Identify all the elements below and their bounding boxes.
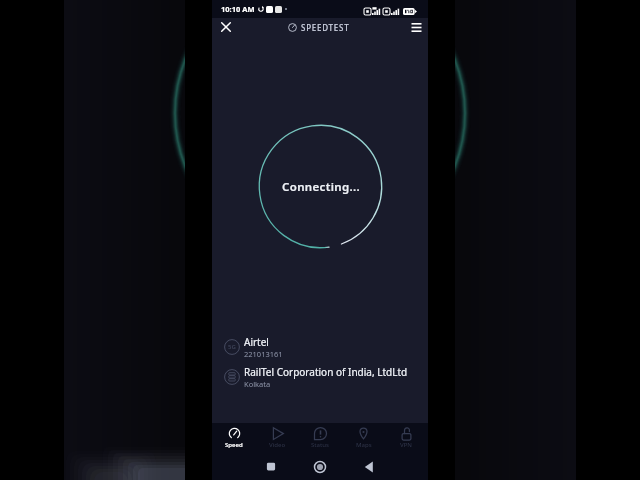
button[interactable]: Menu [407,18,425,36]
staticText: Connecting... [282,179,361,195]
staticText: Video [269,441,286,449]
staticText: RailTel Corporation of India, LtdLtd [244,365,408,379]
button[interactable]: Speed [212,423,256,453]
button[interactable]: Home [311,458,329,476]
staticText: 221013161 [244,349,283,359]
staticText: SPEEDTEST [301,22,350,33]
staticText: VPN [400,441,413,449]
button[interactable]: VPN [385,423,428,453]
staticText: Status [311,441,330,449]
button[interactable]: RailTel Corporation of India, LtdLtd [224,365,440,389]
staticText: 5G [228,343,236,351]
staticText: Maps [356,441,372,449]
button[interactable]: 5G [224,335,440,359]
button[interactable]: Maps [342,423,385,453]
button[interactable]: Close [217,18,235,36]
staticText: Airtel [244,335,269,349]
staticText: Speed [225,441,243,449]
button[interactable]: Back [360,458,378,476]
staticText: Kolkata [244,379,271,389]
button[interactable]: Status [299,423,342,453]
button[interactable]: Video [256,423,299,453]
button[interactable]: Recents [262,458,280,476]
staticText: 10:10 AM [221,4,255,14]
